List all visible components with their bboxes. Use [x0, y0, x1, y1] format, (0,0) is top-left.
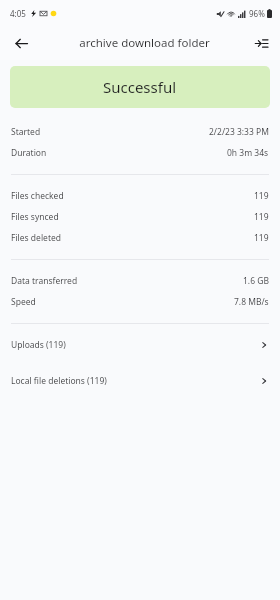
button[interactable]: Back	[6, 28, 36, 58]
staticText: Successful	[103, 77, 177, 97]
staticText: Files deleted	[11, 232, 61, 244]
staticText: Files checked	[11, 190, 64, 202]
staticText: 2/2/23 3:33 PM	[209, 126, 269, 138]
staticText: Speed	[11, 296, 36, 308]
staticText: 96%	[249, 8, 265, 19]
staticText: Data transferred	[11, 275, 78, 287]
staticText: archive download folder	[79, 35, 210, 51]
button[interactable]: Successful	[10, 66, 270, 108]
staticText: Files synced	[11, 211, 59, 223]
staticText: 4:05	[10, 8, 26, 19]
staticText: 119	[254, 190, 269, 202]
staticText: 119	[254, 232, 269, 244]
staticText: Duration	[11, 147, 47, 159]
button[interactable]: Uploads (119)	[0, 327, 280, 363]
staticText: 0h 3m 34s	[227, 147, 269, 159]
button[interactable]: Move to folder	[247, 29, 275, 57]
staticText: 7.8 MB/s	[234, 296, 269, 308]
staticText: 119	[254, 211, 269, 223]
staticText: Uploads (119)	[11, 339, 66, 351]
staticText: Local file deletions (119)	[11, 375, 107, 387]
staticText: Started	[11, 126, 41, 138]
staticText: 1.6 GB	[243, 275, 269, 287]
button[interactable]: Local file deletions (119)	[0, 363, 280, 399]
